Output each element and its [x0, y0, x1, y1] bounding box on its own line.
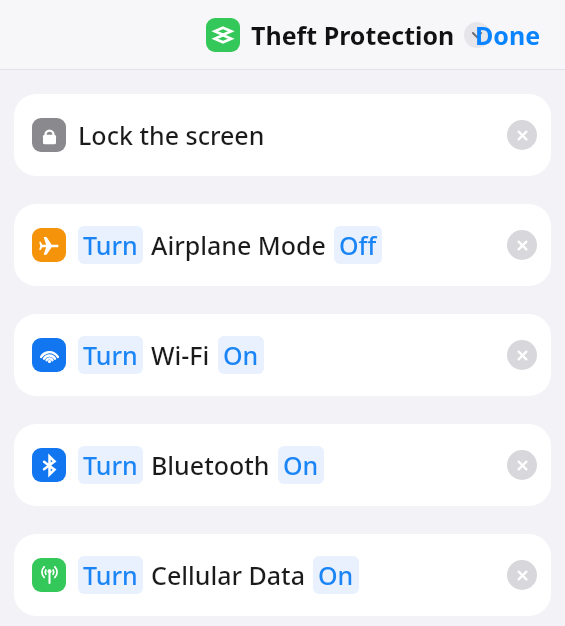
button[interactable]: Remove action	[507, 340, 537, 370]
button[interactable]: Turn	[14, 424, 551, 506]
button[interactable]: Turn	[14, 204, 551, 286]
button[interactable]: Remove action	[507, 450, 537, 480]
staticText: Turn	[83, 228, 138, 262]
button[interactable]: Turn	[78, 446, 143, 484]
staticText: Turn	[83, 338, 138, 372]
button[interactable]: Turn	[78, 226, 143, 264]
button[interactable]: Remove action	[507, 560, 537, 590]
button[interactable]: On	[278, 446, 324, 484]
button[interactable]: Remove action	[507, 120, 537, 150]
staticText: Bluetooth	[151, 448, 270, 482]
button[interactable]: Off	[334, 226, 382, 264]
staticText: Turn	[83, 448, 138, 482]
button[interactable]: Done	[467, 14, 549, 56]
button[interactable]: Turn	[14, 534, 551, 616]
button[interactable]: Theft Protection	[206, 18, 490, 52]
button[interactable]: Lock the screen	[14, 94, 551, 176]
staticText: Airplane Mode	[151, 228, 326, 262]
staticText: Lock the screen	[78, 118, 265, 152]
staticText: Off	[339, 228, 377, 262]
staticText: Done	[475, 18, 541, 52]
staticText: On	[283, 448, 319, 482]
staticText: Turn	[83, 558, 138, 592]
button[interactable]: On	[218, 336, 264, 374]
button[interactable]: On	[313, 556, 359, 594]
staticText: Theft Protection	[251, 18, 455, 52]
button[interactable]: Turn	[78, 556, 143, 594]
staticText: On	[223, 338, 259, 372]
staticText: Wi-Fi	[151, 338, 210, 372]
button[interactable]: Turn	[14, 314, 551, 396]
button[interactable]: Expand menu	[464, 22, 490, 48]
staticText: Cellular Data	[151, 558, 305, 592]
button[interactable]: Remove action	[507, 230, 537, 260]
button[interactable]: Turn	[78, 336, 143, 374]
staticText: On	[318, 558, 354, 592]
